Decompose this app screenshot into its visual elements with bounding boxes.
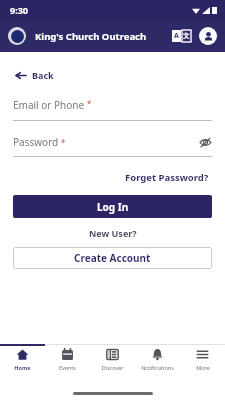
staticText: *: [61, 137, 66, 148]
button[interactable]: Create Account: [13, 247, 212, 269]
staticText: Password: [13, 135, 59, 149]
button[interactable]: Notifications: [135, 348, 180, 386]
button[interactable]: Email or Phone: [13, 98, 212, 121]
staticText: Back: [32, 69, 54, 81]
button[interactable]: Forget Password?: [122, 168, 212, 187]
staticText: Home: [14, 364, 31, 371]
staticText: Notifications: [141, 364, 174, 371]
staticText: Email or Phone: [13, 98, 85, 112]
staticText: King's Church Outreach: [35, 30, 147, 43]
staticText: *: [87, 98, 92, 109]
staticText: Discover: [101, 364, 124, 371]
button[interactable]: Show password: [198, 135, 212, 149]
staticText: 文: [183, 32, 190, 40]
button[interactable]: Account: [199, 27, 217, 45]
staticText: More: [196, 364, 210, 371]
button[interactable]: Events: [45, 348, 90, 386]
button[interactable]: Log In: [13, 195, 212, 218]
button[interactable]: New User?: [87, 225, 139, 241]
staticText: Log In: [97, 200, 129, 214]
button[interactable]: Home: [0, 348, 45, 386]
button[interactable]: Translate: [172, 30, 191, 42]
button[interactable]: More: [180, 348, 225, 386]
button[interactable]: Discover: [90, 348, 135, 386]
staticText: Events: [59, 364, 76, 371]
button[interactable]: App logo: [8, 27, 26, 45]
button[interactable]: Password: [13, 135, 212, 157]
staticText: Create Account: [74, 251, 151, 265]
staticText: A: [174, 31, 179, 41]
button[interactable]: Back: [13, 66, 56, 84]
staticText: 9:30: [10, 4, 28, 16]
